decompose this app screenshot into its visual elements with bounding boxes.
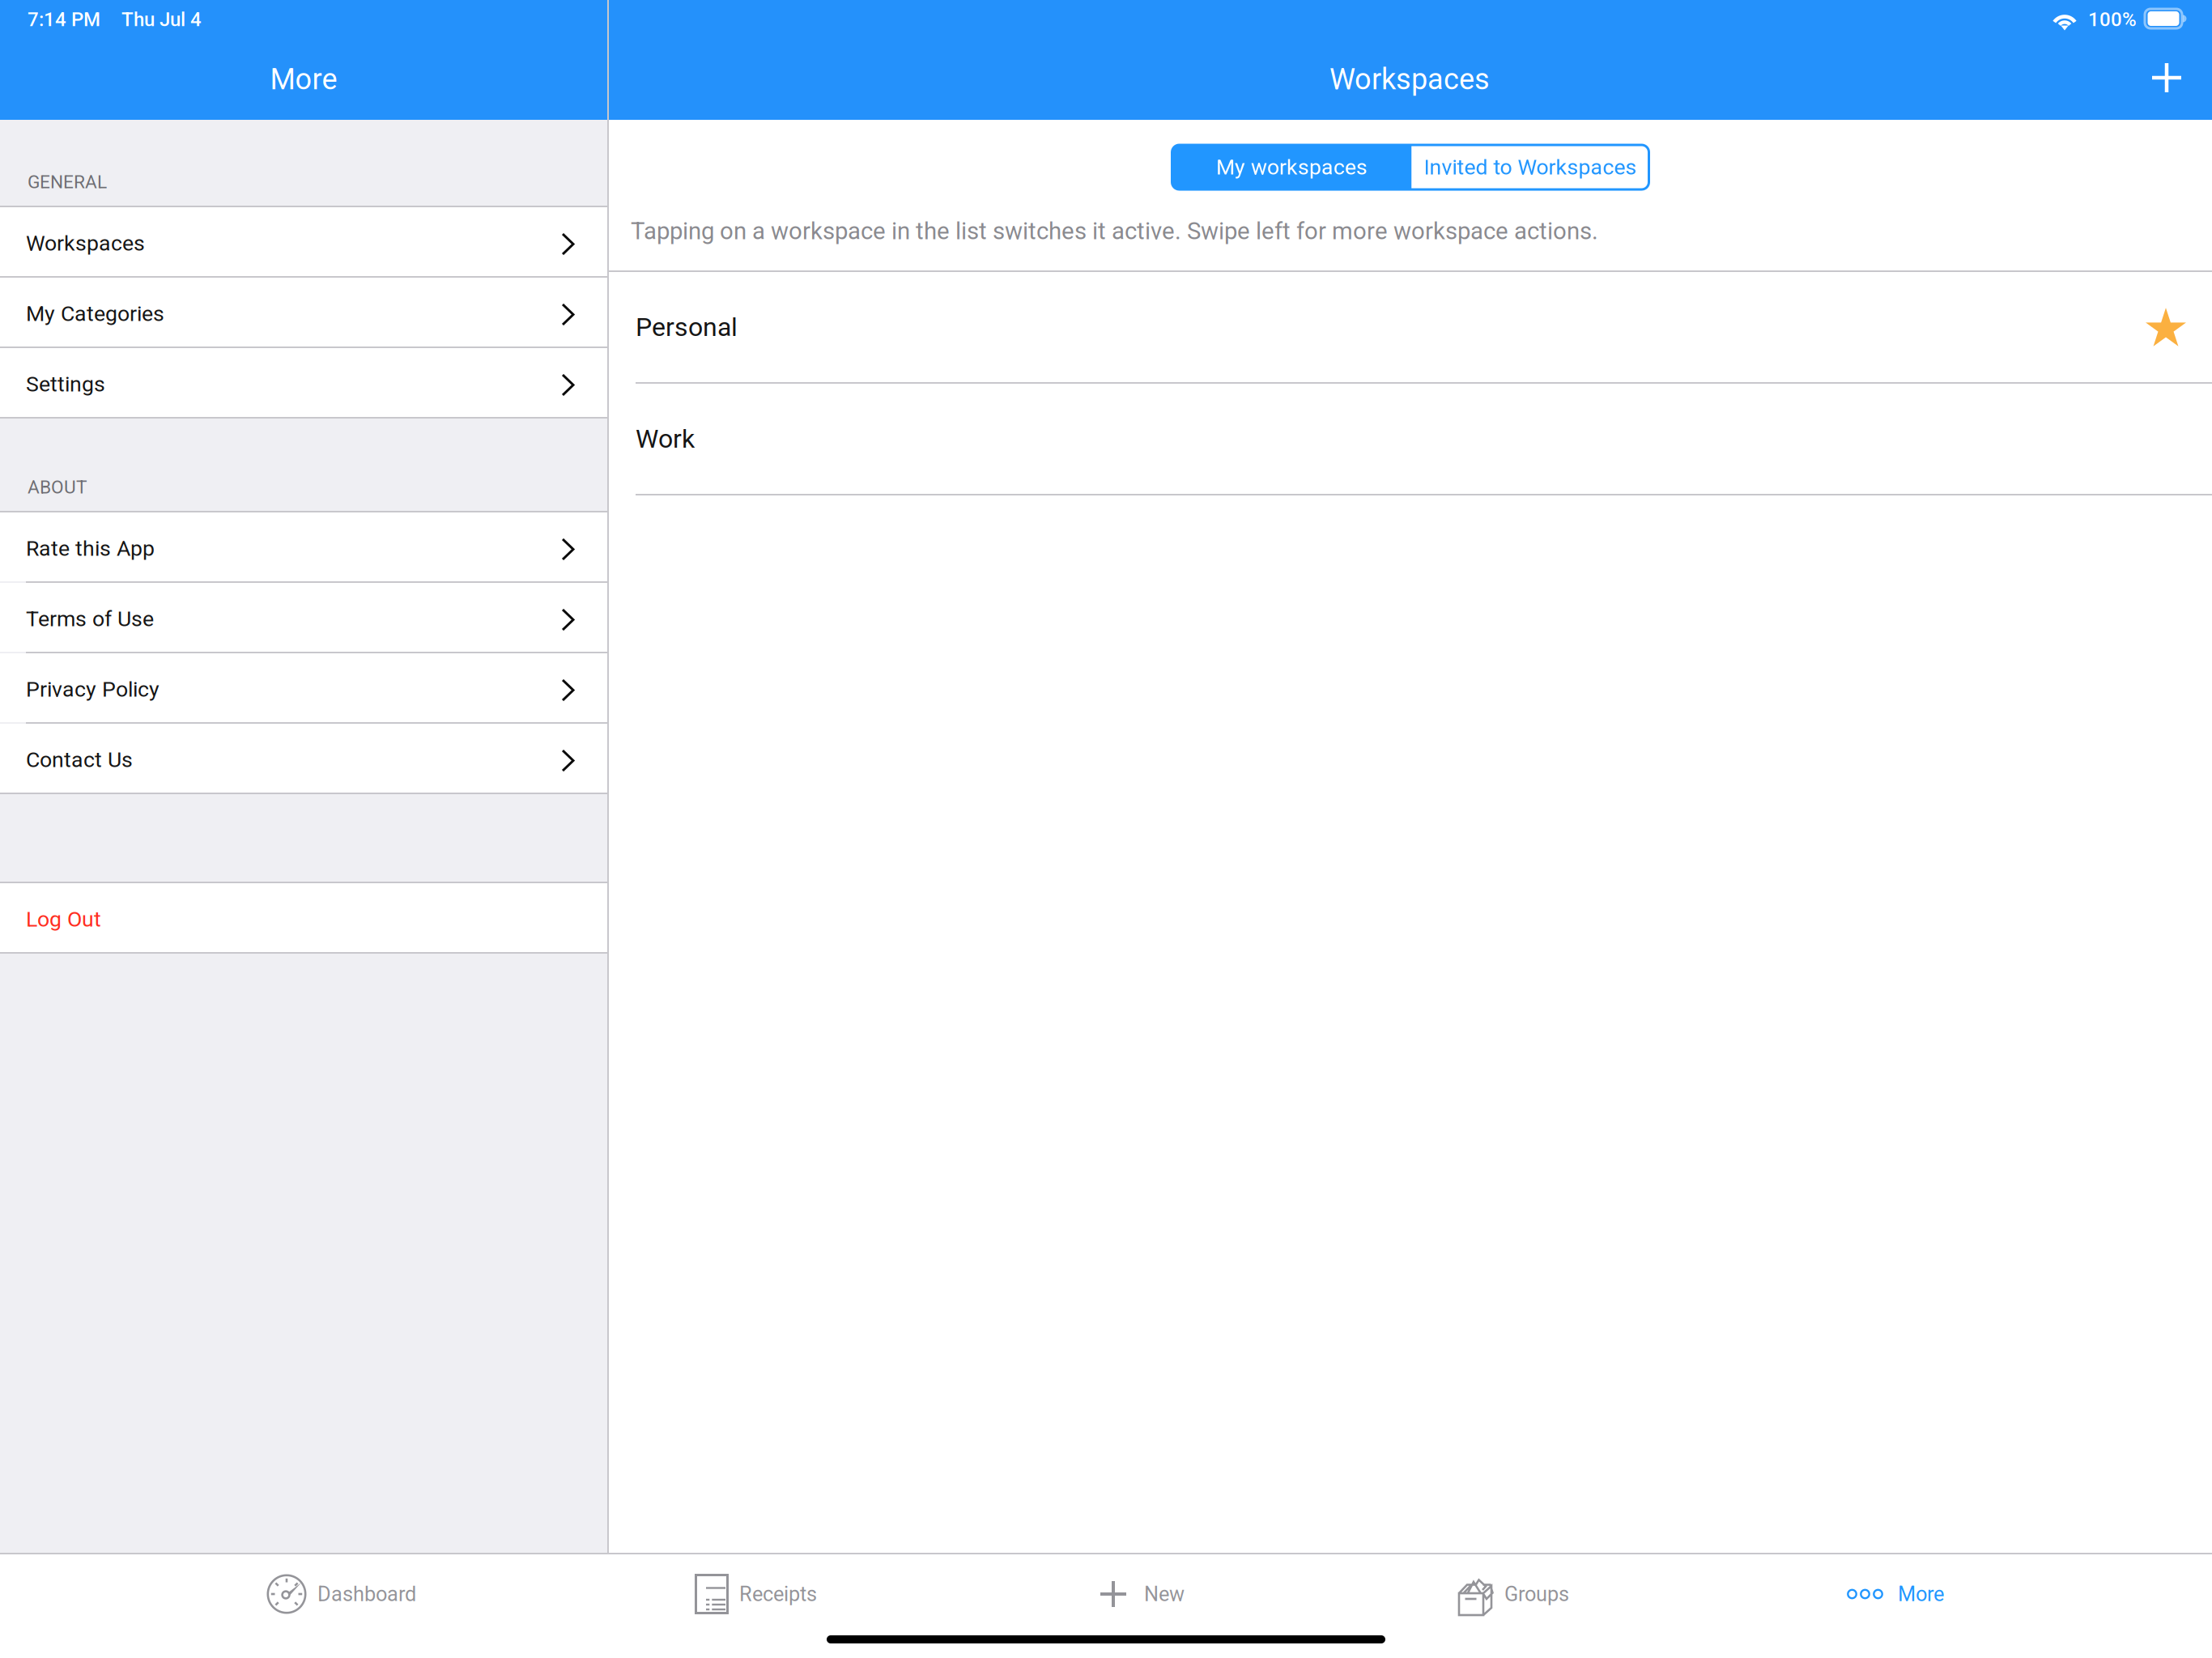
staticText: Rate this App	[26, 536, 155, 561]
staticText: Thu Jul 4	[121, 8, 202, 31]
button[interactable]: Workspaces	[0, 207, 607, 276]
button[interactable]: Groups	[1429, 1554, 1590, 1634]
button[interactable]: Invited to Workspaces	[1412, 145, 1649, 189]
staticText: Log Out	[26, 907, 101, 932]
button[interactable]: My workspaces	[1172, 145, 1412, 189]
button[interactable]: Privacy Policy	[0, 653, 607, 722]
button[interactable]: More	[1826, 1554, 1965, 1634]
button[interactable]: New	[1078, 1554, 1206, 1634]
staticText: Dashboard	[317, 1582, 416, 1606]
staticText: ABOUT	[28, 476, 87, 498]
staticText: Groups	[1504, 1582, 1569, 1606]
staticText: Contact Us	[26, 747, 133, 772]
staticText: Invited to Workspaces	[1424, 155, 1637, 180]
button[interactable]: My Categories	[0, 278, 607, 346]
button[interactable]: Personal	[609, 272, 2212, 382]
staticText: New	[1144, 1582, 1185, 1606]
staticText: My Categories	[26, 301, 164, 326]
staticText: GENERAL	[28, 171, 107, 193]
button[interactable]: Add workspace	[2134, 45, 2199, 110]
staticText: Terms of Use	[26, 606, 154, 632]
button[interactable]: Log Out	[0, 883, 607, 952]
staticText: Privacy Policy	[26, 677, 160, 702]
staticText: 7:14 PM	[28, 8, 100, 31]
button[interactable]: Dashboard	[245, 1554, 437, 1634]
staticText: 100%	[2088, 8, 2137, 31]
staticText: More	[1898, 1582, 1944, 1606]
staticText: Workspaces	[26, 231, 145, 256]
button[interactable]: Settings	[0, 348, 607, 417]
staticText: Settings	[26, 372, 105, 397]
staticText: Receipts	[739, 1582, 817, 1606]
staticText: Personal	[636, 312, 738, 342]
staticText: Work	[636, 424, 695, 454]
staticText: Tapping on a workspace in the list switc…	[631, 217, 1598, 245]
button[interactable]: Contact Us	[0, 724, 607, 793]
staticText: Workspaces	[1329, 62, 1490, 96]
button[interactable]: Terms of Use	[0, 583, 607, 652]
staticText: My workspaces	[1216, 155, 1368, 180]
button[interactable]: Rate this App	[0, 512, 607, 581]
staticText: More	[270, 62, 337, 96]
button[interactable]: Work	[609, 384, 2212, 494]
button[interactable]: Receipts	[674, 1554, 838, 1634]
